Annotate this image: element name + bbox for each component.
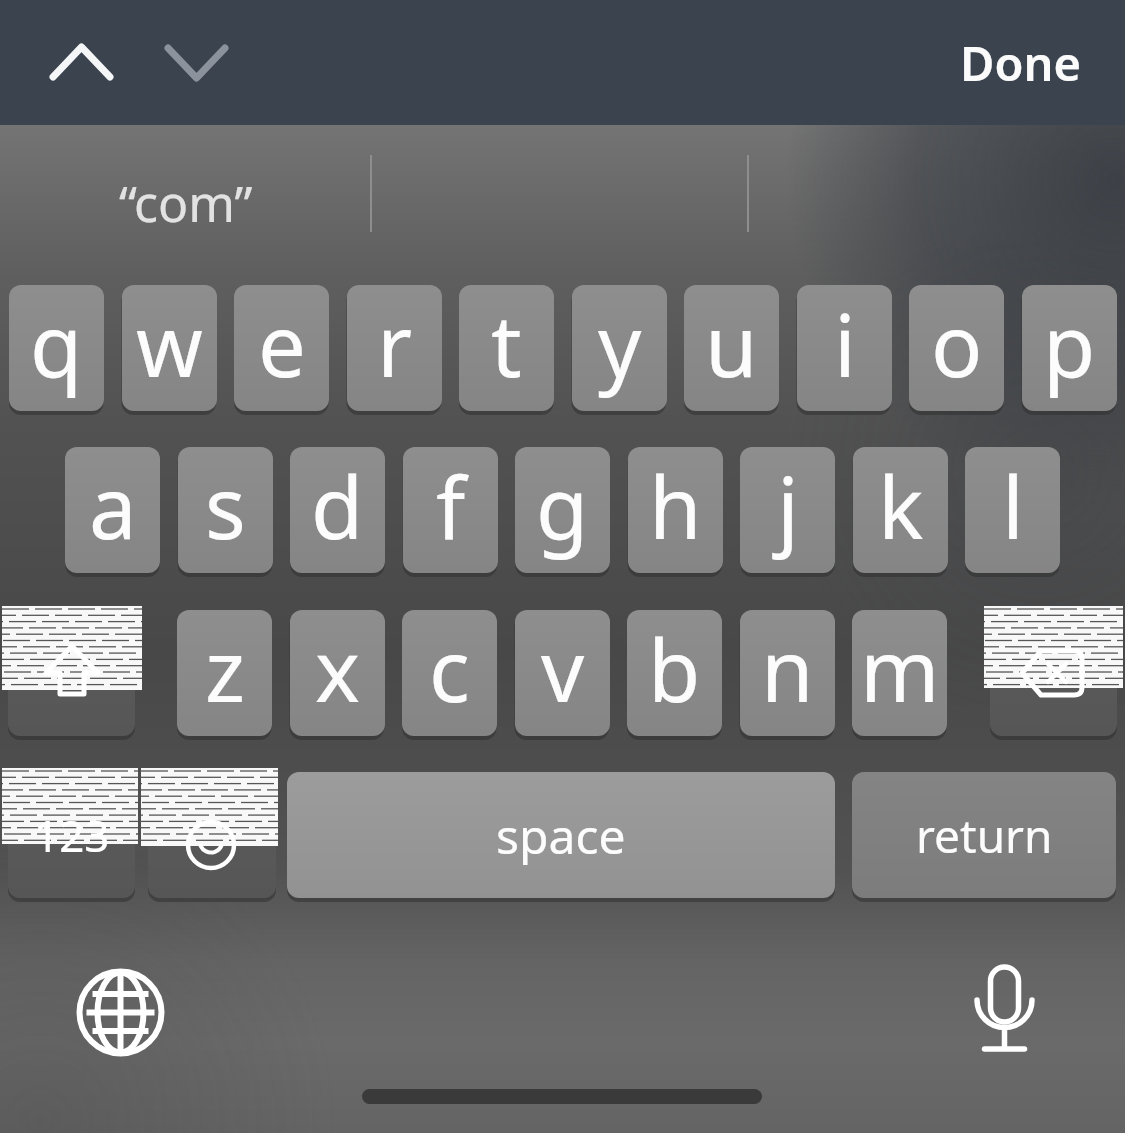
staticText: space: [496, 803, 626, 868]
staticText: y: [598, 286, 642, 402]
staticText: r: [377, 286, 413, 402]
button[interactable]: k: [853, 447, 948, 573]
button[interactable]: [8, 610, 135, 736]
button[interactable]: u: [684, 285, 779, 411]
staticText: o: [931, 286, 983, 402]
button[interactable]: return: [852, 772, 1116, 898]
button[interactable]: y: [572, 285, 667, 411]
button[interactable]: g: [515, 447, 610, 573]
staticText: f: [436, 448, 466, 564]
staticText: s: [205, 448, 246, 564]
staticText: j: [777, 448, 799, 564]
button[interactable]: v: [515, 610, 610, 736]
staticText: l: [1002, 448, 1024, 564]
button[interactable]: c: [402, 610, 497, 736]
staticText: p: [1043, 286, 1096, 402]
staticText: k: [878, 448, 924, 564]
staticText: q: [30, 286, 83, 402]
staticText: c: [429, 611, 470, 727]
button[interactable]: w: [122, 285, 217, 411]
staticText: u: [705, 286, 758, 402]
staticText: e: [258, 286, 306, 402]
staticText: n: [761, 611, 814, 727]
button[interactable]: [33, 20, 130, 105]
button[interactable]: e: [234, 285, 329, 411]
button[interactable]: s: [178, 447, 273, 573]
button[interactable]: j: [740, 447, 835, 573]
button[interactable]: Done: [935, 15, 1105, 110]
button[interactable]: f: [403, 447, 498, 573]
staticText: d: [311, 448, 364, 564]
staticText: g: [536, 448, 589, 564]
staticText: z: [205, 611, 245, 727]
button[interactable]: o: [909, 285, 1004, 411]
button[interactable]: i: [797, 285, 892, 411]
staticText: 123: [34, 805, 110, 865]
button[interactable]: x: [290, 610, 385, 736]
staticText: Done: [960, 31, 1081, 95]
button[interactable]: t: [459, 285, 554, 411]
button[interactable]: [75, 966, 175, 1066]
button[interactable]: [8, 772, 135, 898]
button[interactable]: z: [177, 610, 272, 736]
button[interactable]: h: [628, 447, 723, 573]
button[interactable]: q: [9, 285, 104, 411]
button[interactable]: [148, 772, 276, 898]
staticText: i: [834, 286, 856, 402]
button[interactable]: p: [1022, 285, 1117, 411]
button[interactable]: “com”: [0, 125, 371, 280]
staticText: x: [315, 611, 360, 727]
button[interactable]: [748, 125, 1125, 280]
button[interactable]: r: [347, 285, 442, 411]
staticText: return: [916, 804, 1053, 867]
staticText: m: [860, 611, 940, 727]
button[interactable]: [955, 960, 1055, 1060]
staticText: h: [649, 448, 702, 564]
button[interactable]: [990, 610, 1117, 736]
staticText: v: [541, 611, 585, 727]
staticText: a: [89, 448, 137, 564]
button[interactable]: space: [287, 772, 835, 898]
button[interactable]: d: [290, 447, 385, 573]
staticText: b: [648, 611, 701, 727]
button[interactable]: m: [852, 610, 947, 736]
button[interactable]: [371, 125, 748, 280]
staticText: w: [136, 286, 203, 402]
staticText: t: [491, 286, 522, 402]
button[interactable]: n: [740, 610, 835, 736]
button[interactable]: l: [965, 447, 1060, 573]
button[interactable]: [148, 20, 245, 105]
staticText: “com”: [119, 169, 253, 237]
button[interactable]: a: [65, 447, 160, 573]
button[interactable]: b: [627, 610, 722, 736]
